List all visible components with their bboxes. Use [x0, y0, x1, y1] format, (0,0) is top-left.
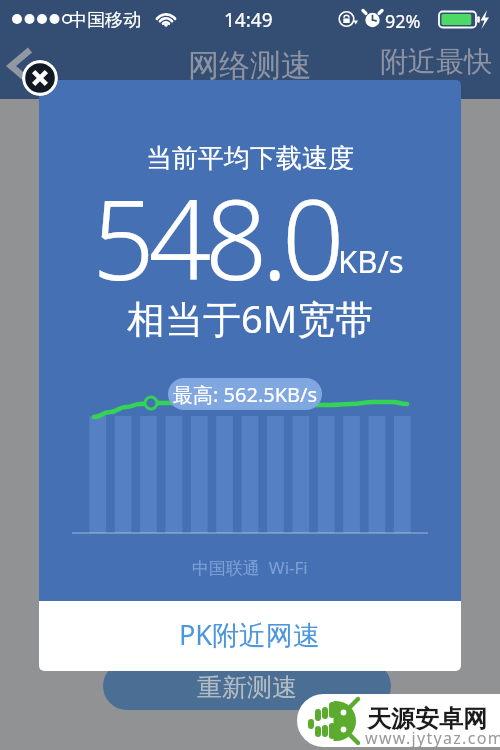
staticText: 天源安卓网: [367, 704, 487, 734]
button[interactable]: Close: [22, 60, 58, 96]
staticText: 14:49: [224, 7, 273, 33]
staticText: 92%: [385, 9, 421, 34]
staticText: 最高: 562.5KB/s: [173, 381, 318, 408]
staticText: 附近最快: [380, 44, 492, 79]
button[interactable]: PK附近网速: [39, 601, 461, 671]
staticText: 当前平均下载速度: [146, 142, 354, 175]
button[interactable]: 重新测速: [103, 662, 391, 710]
staticText: 相当于6M宽带: [127, 292, 374, 344]
staticText: 网络测速: [188, 46, 312, 85]
staticText: 中国移动: [69, 9, 141, 32]
staticText: 548.0: [92, 162, 339, 312]
staticText: www.jytyaz.com: [365, 727, 500, 747]
button[interactable]: Back: [0, 38, 46, 84]
staticText: KB/s: [338, 240, 404, 282]
staticText: PK附近网速: [179, 616, 321, 653]
staticText: 中国联通 Wi-Fi: [192, 556, 308, 579]
staticText: 重新测速: [197, 672, 297, 703]
button[interactable]: 附近最快: [376, 38, 496, 84]
